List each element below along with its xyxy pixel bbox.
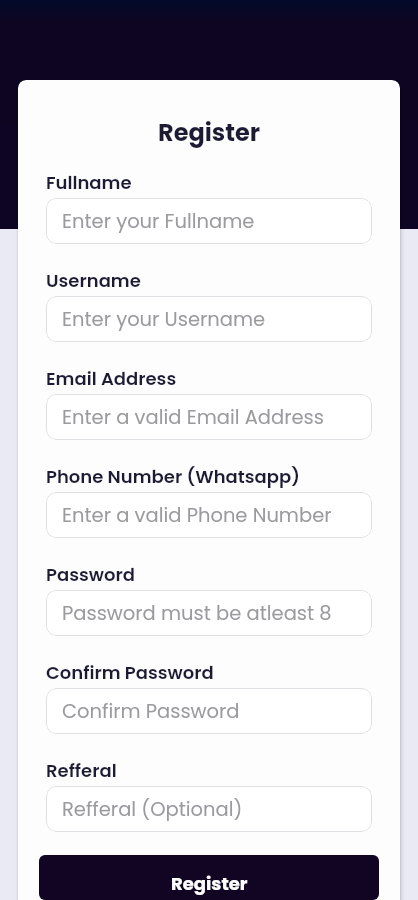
staticText: Phone Number (Whatsapp): [46, 464, 300, 489]
button[interactable]: Enter a valid Phone Number: [46, 492, 372, 538]
button[interactable]: Password must be atleast 8: [46, 590, 372, 636]
staticText: Username: [46, 268, 141, 293]
staticText: Password must be atleast 8: [62, 600, 332, 627]
staticText: Email Address: [46, 366, 177, 391]
staticText: Enter your Username: [62, 306, 266, 333]
staticText: Enter a valid Phone Number: [62, 502, 332, 529]
staticText: Fullname: [46, 170, 132, 195]
staticText: Refferal: [46, 758, 117, 783]
button[interactable]: Enter a valid Email Address: [46, 394, 372, 440]
button[interactable]: Register: [39, 855, 379, 900]
staticText: Refferal (Optional): [62, 796, 243, 823]
staticText: Password: [46, 562, 135, 587]
staticText: Enter a valid Email Address: [62, 404, 324, 431]
button[interactable]: Enter your Username: [46, 296, 372, 342]
staticText: Register: [171, 871, 248, 896]
staticText: Confirm Password: [46, 660, 214, 685]
button[interactable]: Enter your Fullname: [46, 198, 372, 244]
staticText: Enter your Fullname: [62, 208, 255, 235]
staticText: Confirm Password: [62, 698, 240, 725]
staticText: Register: [18, 116, 400, 150]
button[interactable]: Confirm Password: [46, 688, 372, 734]
button[interactable]: Refferal (Optional): [46, 786, 372, 832]
